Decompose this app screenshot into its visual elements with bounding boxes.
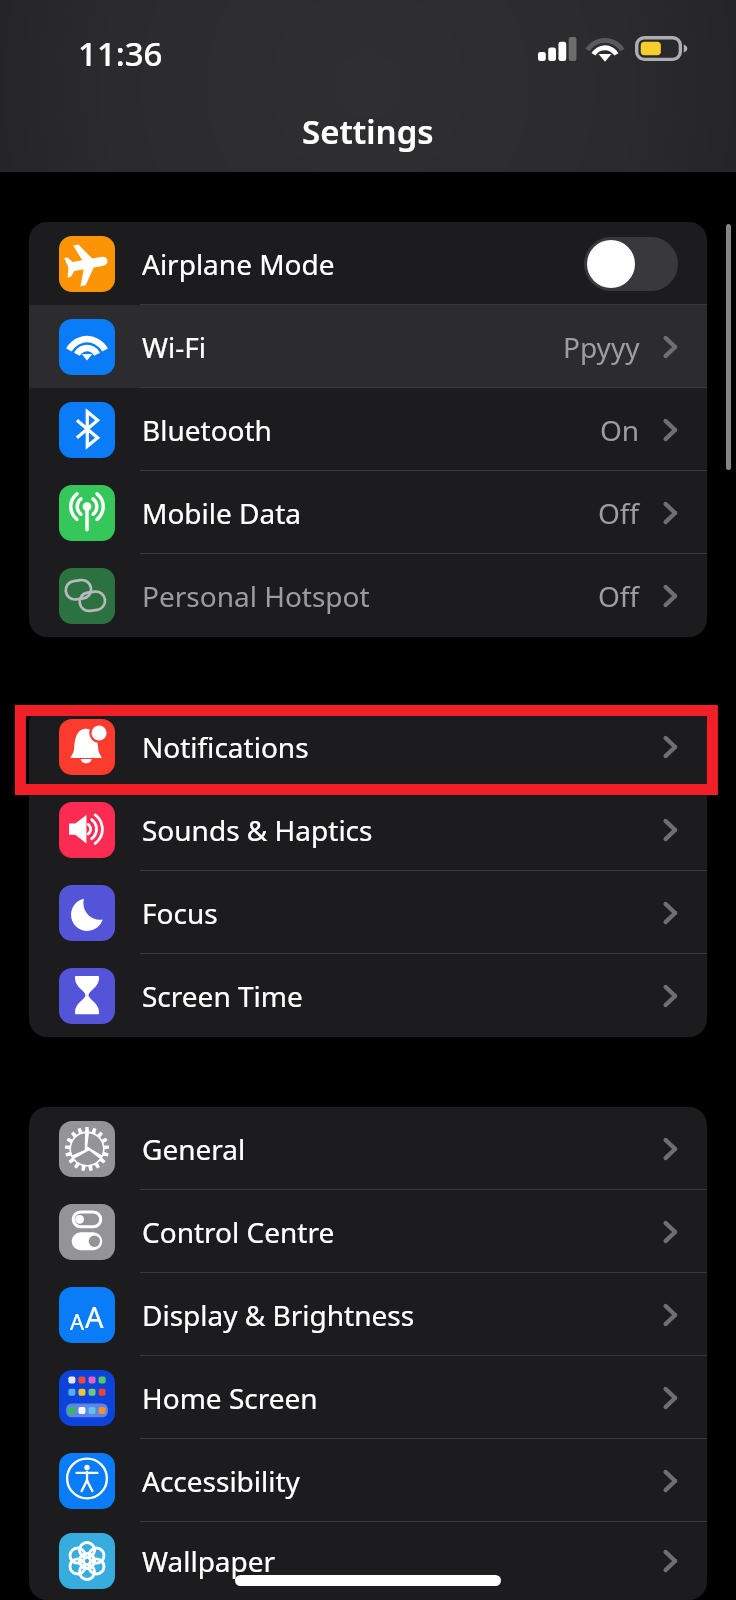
staticText: Focus — [142, 894, 662, 932]
button[interactable]: Notifications — [29, 705, 707, 788]
staticText: Wallpaper — [142, 1542, 662, 1580]
staticText: On — [600, 411, 640, 449]
staticText: Accessibility — [142, 1462, 662, 1500]
staticText: Sounds & Haptics — [142, 811, 662, 849]
button[interactable]: Bluetooth — [29, 388, 707, 471]
button[interactable]: Home Screen — [29, 1356, 707, 1439]
button[interactable]: Control Centre — [29, 1190, 707, 1273]
staticText: Bluetooth — [142, 411, 600, 449]
staticText: Mobile Data — [142, 494, 598, 532]
staticText: Control Centre — [142, 1213, 662, 1251]
button[interactable]: General — [29, 1107, 707, 1190]
staticText: Home Screen — [142, 1379, 662, 1417]
staticText: Display & Brightness — [142, 1296, 662, 1334]
button[interactable]: Personal Hotspot — [29, 554, 707, 637]
button[interactable]: Focus — [29, 871, 707, 954]
button[interactable]: Wallpaper — [29, 1522, 707, 1600]
staticText: Ppyyy — [563, 328, 640, 366]
button[interactable]: Mobile Data — [29, 471, 707, 554]
button[interactable]: Airplane Mode toggle — [584, 237, 678, 291]
staticText: Off — [598, 577, 640, 615]
staticText: Off — [598, 494, 640, 532]
button[interactable]: Accessibility — [29, 1439, 707, 1522]
staticText: Wi-Fi — [142, 328, 563, 366]
staticText: A — [70, 1306, 85, 1336]
staticText: 11:36 — [78, 31, 163, 76]
staticText: General — [142, 1130, 662, 1168]
button[interactable]: Sounds & Haptics — [29, 788, 707, 871]
button[interactable]: Wi-Fi — [29, 305, 707, 388]
staticText: Personal Hotspot — [142, 577, 598, 615]
staticText: Notifications — [142, 728, 662, 766]
staticText: Airplane Mode — [142, 245, 584, 283]
staticText: Settings — [302, 109, 434, 154]
button[interactable]: Airplane Mode — [29, 222, 707, 305]
staticText: Screen Time — [142, 977, 662, 1015]
button[interactable]: Screen Time — [29, 954, 707, 1037]
button[interactable]: A — [29, 1273, 707, 1356]
staticText: A — [85, 1297, 104, 1336]
